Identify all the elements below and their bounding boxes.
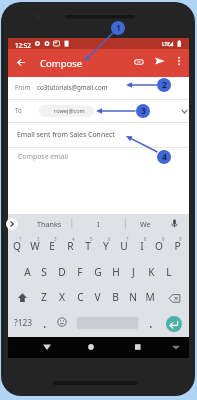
button[interactable]: H [107,262,125,282]
staticText: co3tutorials@gmail.com [37,83,108,91]
button[interactable]: rowej@com [39,105,94,117]
button[interactable]: Enter [166,316,182,332]
staticText: L [166,265,172,279]
staticText: J [132,265,135,279]
button[interactable]: E [43,236,61,256]
staticText: 1 [116,22,121,34]
button[interactable]: F [71,262,89,282]
staticText: Thanks [37,219,62,229]
staticText: 8 [144,236,147,242]
button[interactable]: Emoji [56,316,68,328]
button[interactable]: Back [12,53,30,71]
button[interactable]: T [79,236,97,256]
button[interactable]: R [61,236,79,256]
staticText: 1 [19,236,22,242]
staticText: X [59,290,65,304]
staticText: I [140,239,144,253]
button[interactable]: To [8,100,189,122]
button[interactable]: M [141,287,159,307]
staticText: Compose email [18,152,69,161]
button[interactable]: C [71,287,89,307]
staticText: 2 [37,236,40,242]
button[interactable]: We [128,214,163,233]
staticText: P [174,239,181,253]
button[interactable]: Z [35,287,53,307]
button[interactable]: Send [151,52,169,70]
staticText: M [145,290,155,304]
button[interactable]: L [160,262,178,282]
staticText: E [49,239,55,253]
button[interactable]: W [26,236,44,256]
staticText: ?123 [14,317,33,328]
staticText: To [15,106,22,114]
staticText: T [85,239,91,253]
button[interactable]: I [83,214,113,233]
staticText: 9 [162,236,165,242]
button[interactable]: J [124,262,142,282]
button[interactable]: Expand recipients [179,106,190,117]
button[interactable]: D [53,262,71,282]
staticText: Q [13,239,21,253]
button[interactable]: 1 [111,21,125,35]
staticText: 2 [162,79,167,91]
button[interactable]: A [18,262,36,282]
button[interactable]: Thanks [28,214,70,233]
staticText: rowej@com [54,107,85,115]
button[interactable]: K [142,262,160,282]
staticText: 3 [54,236,57,242]
button[interactable]: More suggestions [6,218,18,230]
button[interactable]: N [124,287,142,307]
button[interactable]: 4 [157,150,171,164]
staticText: 3 [141,105,146,117]
button[interactable]: Q [8,236,26,256]
button[interactable]: Voice input [169,218,180,229]
staticText: 6 [108,236,111,242]
staticText: C [77,290,84,304]
button[interactable]: X [53,287,71,307]
staticText: F [77,265,83,279]
button[interactable]: 2 [157,78,171,92]
button[interactable]: P [168,236,186,256]
button[interactable]: V [88,287,106,307]
staticText: I [97,219,100,229]
button[interactable]: B [106,287,124,307]
staticText: R [67,239,74,253]
staticText: Email sent from Sales Connect [17,130,115,139]
button[interactable]: Y [97,236,115,256]
button[interactable]: O [150,236,168,256]
button[interactable]: More options [172,52,186,70]
button[interactable]: I [133,236,151,256]
staticText: 0 [179,236,182,242]
button[interactable]: ?123 [13,312,33,332]
staticText: O [155,239,163,253]
staticText: From [15,83,31,91]
button[interactable]: From [8,77,189,99]
button[interactable]: U [115,236,133,256]
staticText: LTE [162,41,170,47]
staticText: W [30,239,40,253]
staticText: N [129,290,137,304]
staticText: D [58,265,66,279]
button[interactable]: S [35,262,53,282]
staticText: 7 [126,236,129,242]
staticText: 5 [90,236,93,242]
button[interactable]: 3 [136,104,150,118]
staticText: Y [103,239,109,253]
staticText: A [24,265,31,279]
staticText: V [94,290,101,304]
staticText: S [41,265,47,279]
button[interactable]: Email sent from Sales Connect [8,123,189,147]
button[interactable]: Compose email [8,148,189,214]
button[interactable]: Attach file [130,53,148,71]
staticText: H [112,265,120,279]
staticText: U [120,239,128,253]
staticText: G [94,265,102,279]
staticText: B [112,290,119,304]
button[interactable]: Compose [40,57,83,70]
staticText: We [140,219,151,229]
button[interactable]: G [89,262,107,282]
staticText: K [148,265,155,279]
staticText: 4 [162,151,167,163]
staticText: 4 [72,236,75,242]
staticText: 12:52 [15,41,31,49]
